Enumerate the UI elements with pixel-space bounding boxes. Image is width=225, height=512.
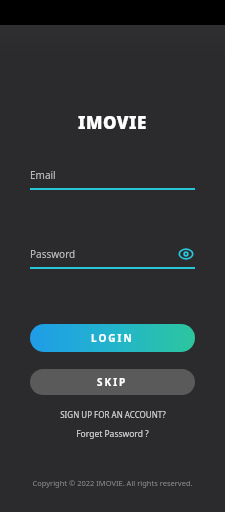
staticText: SKIP [97,375,128,389]
button[interactable]: Password [30,245,195,269]
button[interactable]: SKIP [30,369,195,395]
button[interactable]: Forget Password ? [30,428,195,440]
button[interactable]: SIGN UP FOR AN ACCOUNT? [30,409,195,420]
staticText: Forget Password ? [76,428,149,440]
staticText: Email [30,168,56,182]
button[interactable]: Show password [177,245,195,263]
staticText: SIGN UP FOR AN ACCOUNT? [60,409,166,420]
button[interactable]: Email [30,168,195,190]
staticText: IMOVIE [78,111,147,134]
staticText: Password [30,247,177,261]
staticText: LOGIN [91,331,134,345]
button[interactable]: LOGIN [30,324,195,352]
staticText: Copyright © 2022 IMOVIE. All rights rese… [32,478,193,488]
